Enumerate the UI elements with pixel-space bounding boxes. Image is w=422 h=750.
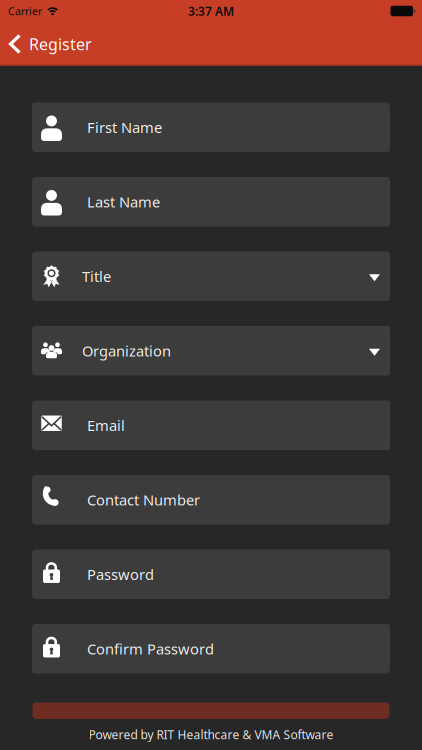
staticText: Powered by RIT Healthcare & VMA Software (88, 726, 333, 742)
button[interactable]: Back (9, 33, 92, 55)
button[interactable]: Register (32, 702, 389, 719)
button[interactable]: Last Name (32, 177, 390, 226)
staticText: Register (29, 33, 92, 55)
button[interactable]: Password (32, 549, 390, 599)
staticText: Carrier (8, 4, 42, 18)
staticText: 3:37 AM (188, 3, 234, 19)
button[interactable]: Organization (32, 326, 390, 375)
staticText: Email (87, 415, 125, 435)
button[interactable]: Title (32, 251, 390, 301)
button[interactable]: Contact Number (32, 475, 390, 524)
button[interactable]: Email (32, 400, 390, 450)
staticText: Title (82, 266, 111, 286)
staticText: Organization (82, 341, 171, 360)
staticText: First Name (87, 117, 162, 137)
staticText: Password (87, 564, 154, 584)
button[interactable]: First Name (32, 102, 390, 152)
button[interactable]: Confirm Password (32, 624, 390, 673)
staticText: Last Name (87, 192, 160, 211)
staticText (208, 50, 214, 80)
staticText: Contact Number (87, 490, 200, 509)
staticText: Confirm Password (87, 639, 214, 658)
